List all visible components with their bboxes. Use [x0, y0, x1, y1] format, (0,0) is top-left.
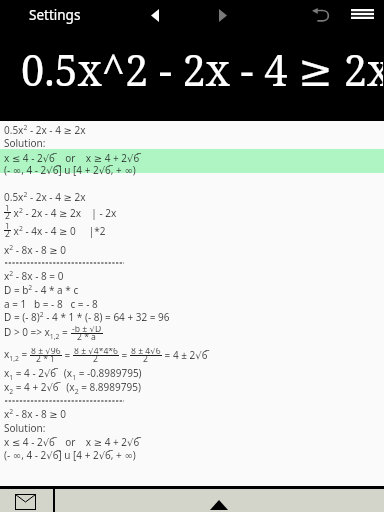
button[interactable]: Previous step [136, 0, 174, 30]
staticText: D = b2 - 4 * a * c [4, 283, 79, 297]
staticText: 8 ± √4*4*6̅ [74, 348, 118, 357]
staticText: 8 ± 4√6̅ [131, 348, 161, 357]
staticText: = [119, 348, 130, 362]
button[interactable]: Next step [204, 0, 242, 30]
staticText: x2 - 8x - 8 ≥ 0 [4, 243, 67, 257]
staticText: 2 * 1 [36, 353, 56, 363]
staticText: D > 0 => x1,2 = [4, 325, 71, 341]
staticText: x2 - 8x - 8 ≥ 0 [4, 407, 67, 421]
staticText: x1 = 4 - 2√6̅ (x1 = -0.8989795) [4, 366, 142, 382]
staticText: 2 [143, 353, 148, 363]
staticText: 8 ± √96̅ [31, 348, 61, 357]
staticText: = 4 ± 2√6̅ [162, 348, 208, 362]
staticText: x2 - 2x - 4 ≥ 2x | - 2x [11, 206, 117, 220]
staticText: 2 [5, 210, 10, 220]
staticText: 2 [93, 353, 98, 363]
staticText: (- ∞, 4 - 2√6̅] u [4 + 2√6̅, + ∞) [4, 163, 136, 177]
staticText: x2 - 8x - 8 = 0 [4, 269, 64, 283]
staticText: (- ∞, 4 - 2√6̅] u [4 + 2√6̅, + ∞) [4, 448, 136, 462]
staticText: 2 [5, 228, 10, 238]
staticText: = [62, 348, 73, 362]
button[interactable]: Scroll up [55, 489, 384, 512]
staticText: 0.5x2 - 2x - 4 ≥ 2x [4, 123, 86, 137]
staticText: Settings [29, 6, 81, 24]
staticText: 0.5x^2 - 2x - 4 ≥ 2x [21, 39, 383, 99]
button[interactable]: Menu [344, 0, 384, 30]
staticText: a = 1 b = - 8 c = - 8 [4, 297, 98, 311]
staticText: x1,2 = [4, 347, 30, 363]
staticText: x2 = 4 + 2√6̅ (x2 = 8.8989795) [4, 380, 141, 396]
staticText: D = (- 8)2 - 4 * 1 * (- 8) = 64 + 32 = 9… [4, 310, 170, 324]
button[interactable]: Undo [301, 0, 341, 30]
staticText: -b ± √D̅ [72, 326, 102, 335]
staticText: x2 - 4x - 4 ≥ 0 |*2 [11, 224, 106, 238]
staticText: 1 [5, 223, 10, 232]
staticText: Solution: [4, 136, 46, 150]
staticText: x ≤ 4 - 2√6̅ or x ≥ 4 + 2√6̅ [4, 435, 140, 449]
staticText: 0.5x2 - 2x - 4 ≥ 2x [4, 190, 86, 204]
button[interactable]: Send email [0, 489, 53, 512]
staticText: 2 * a [77, 331, 96, 341]
staticText: x ≤ 4 - 2√6̅ or x ≥ 4 + 2√6̅ [4, 151, 140, 165]
button[interactable]: Settings [16, 0, 94, 30]
staticText: 1 [5, 205, 10, 214]
staticText: Solution: [4, 421, 46, 435]
